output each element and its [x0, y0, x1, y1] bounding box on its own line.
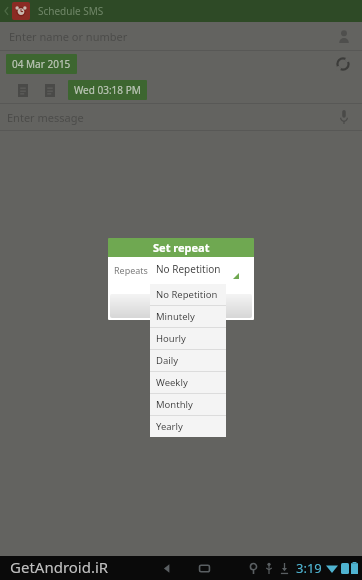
button[interactable]: Yearly	[150, 416, 226, 437]
button[interactable]: Hourly	[150, 328, 226, 349]
staticText: Monthly	[156, 398, 193, 411]
button[interactable]: Back	[155, 557, 177, 579]
staticText: Weekly	[156, 376, 188, 389]
staticText: 3:19	[296, 559, 322, 577]
staticText: Minutely	[156, 310, 195, 323]
button[interactable]: Wed 03:18 PM	[68, 80, 147, 100]
button[interactable]: Cancel	[110, 294, 252, 318]
button[interactable]: Minutely	[150, 306, 226, 327]
button[interactable]: 04 Mar 2015	[6, 54, 77, 74]
button[interactable]: Monthly	[150, 394, 226, 415]
button[interactable]: No Repetition	[150, 284, 226, 305]
staticText: Repeats	[114, 264, 148, 276]
staticText: 04 Mar 2015	[12, 57, 71, 71]
staticText: Enter name or number	[9, 29, 128, 44]
staticText: No Repetition	[156, 288, 218, 301]
button[interactable]: Voice input	[336, 109, 352, 125]
staticText: Hourly	[156, 332, 186, 345]
staticText: No Repetition	[156, 262, 221, 276]
staticText: Wed 03:18 PM	[74, 83, 141, 97]
button[interactable]: Template	[42, 82, 58, 98]
button[interactable]: Weekly	[150, 372, 226, 393]
button[interactable]: Pick contact	[334, 26, 354, 46]
staticText: Set repeat	[153, 240, 210, 255]
staticText: Daily	[156, 354, 179, 367]
button[interactable]: Repeat	[333, 54, 353, 74]
button[interactable]: No Repetition	[156, 261, 240, 282]
staticText: GetAndroid.iR	[10, 557, 109, 577]
button[interactable]: Daily	[150, 350, 226, 371]
staticText: Cancel	[164, 299, 198, 313]
staticText: Schedule SMS	[38, 4, 104, 18]
button[interactable]: Attach	[15, 82, 31, 98]
staticText: Yearly	[156, 420, 183, 433]
button[interactable]: Home	[193, 557, 215, 579]
staticText: Enter message	[7, 110, 84, 125]
